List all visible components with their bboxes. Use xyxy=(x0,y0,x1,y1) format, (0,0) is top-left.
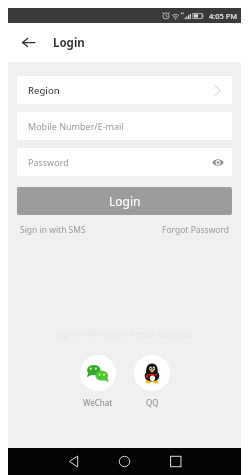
button[interactable]: Mobile Number/E-mail xyxy=(17,112,232,140)
button[interactable]: Back xyxy=(8,23,48,62)
button[interactable]: Password xyxy=(17,148,232,176)
staticText: Login xyxy=(109,193,141,209)
button[interactable]: Forgot Password xyxy=(162,224,230,236)
button[interactable]: Back xyxy=(60,448,87,475)
button[interactable]: Region xyxy=(17,76,232,104)
staticText: 4:05 PM xyxy=(209,11,238,21)
button[interactable]: QQ xyxy=(134,355,170,408)
staticText: Sign in with SMS xyxy=(20,224,86,236)
staticText: QQ xyxy=(146,397,159,408)
staticText: Forgot Password xyxy=(162,224,230,236)
button[interactable]: Recent apps xyxy=(162,448,189,475)
button[interactable]: Show password xyxy=(207,151,229,173)
staticText: Login xyxy=(53,35,85,51)
staticText: WeChat xyxy=(83,397,113,408)
staticText: Mobile Number/E-mail xyxy=(28,120,124,132)
staticText: Region xyxy=(28,84,60,97)
button[interactable]: Sign in with SMS xyxy=(20,224,86,236)
button[interactable]: WeChat xyxy=(80,355,116,408)
button[interactable]: Login xyxy=(17,187,232,215)
staticText: Password xyxy=(28,156,69,168)
button[interactable]: Home xyxy=(111,448,138,475)
